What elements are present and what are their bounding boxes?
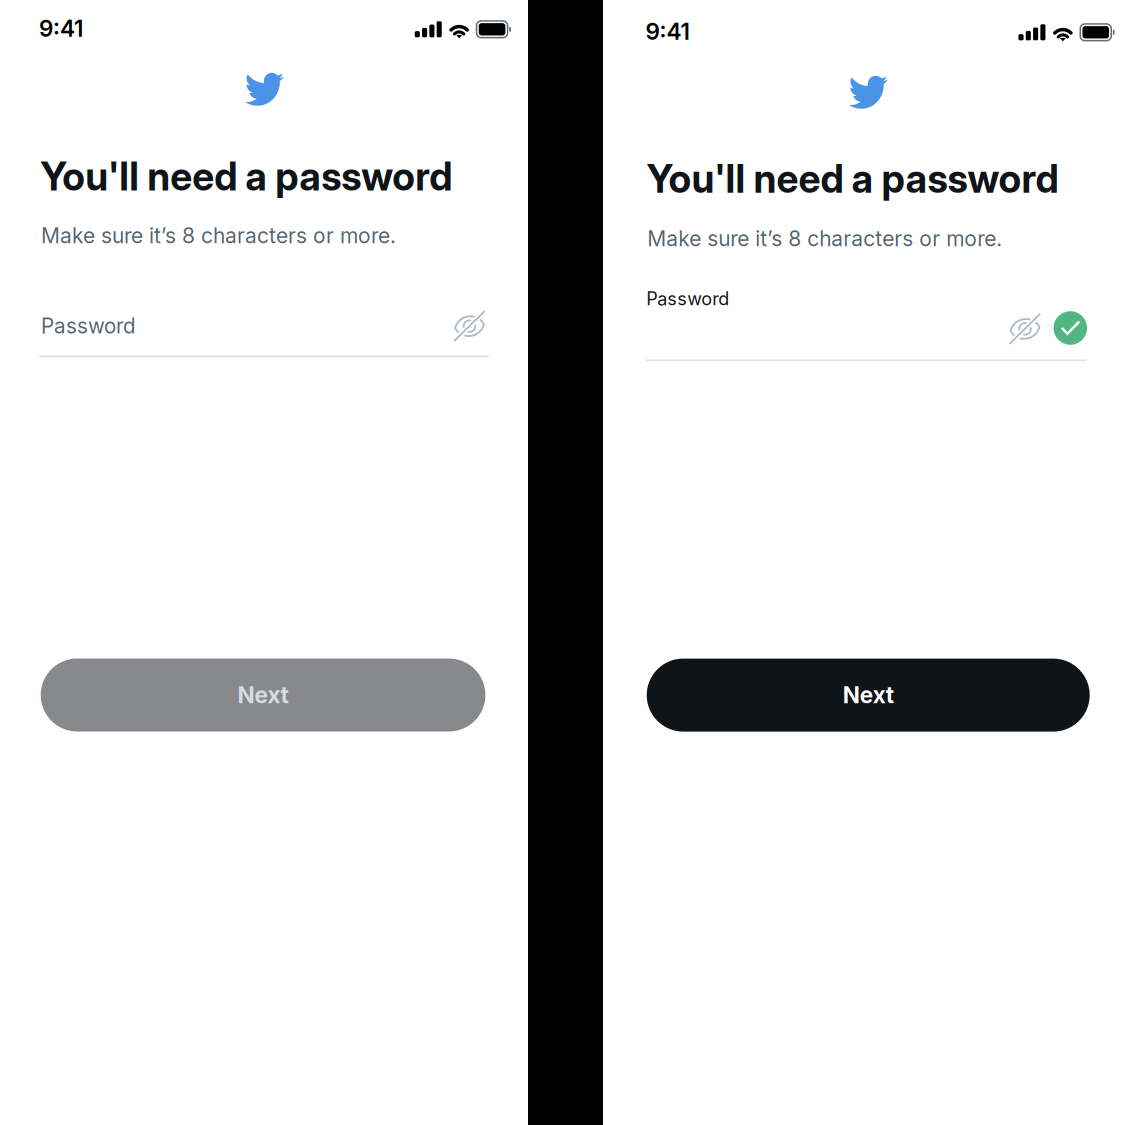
staticText: Make sure it’s 8 characters or more. xyxy=(647,226,1002,251)
button[interactable]: Show password xyxy=(447,304,492,348)
staticText: You'll need a password xyxy=(40,153,452,200)
staticText: Password xyxy=(41,313,136,338)
staticText: Next xyxy=(238,681,289,709)
staticText: 9:41 xyxy=(39,15,83,42)
staticText: Make sure it’s 8 characters or more. xyxy=(41,223,396,248)
button[interactable]: Next xyxy=(647,659,1090,732)
staticText: Next xyxy=(843,681,894,709)
button[interactable]: Next xyxy=(41,658,485,731)
staticText: 9:41 xyxy=(645,18,689,45)
button[interactable]: Hide password xyxy=(1002,307,1047,351)
staticText: You'll need a password xyxy=(646,155,1058,202)
staticText: Password xyxy=(646,288,729,309)
